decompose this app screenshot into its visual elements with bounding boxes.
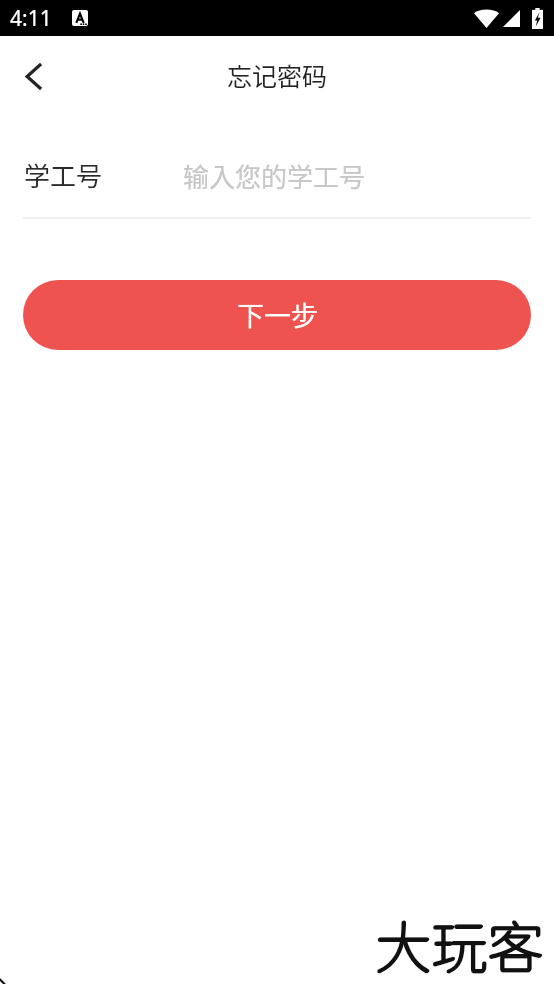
- staticText: 学工号: [24, 156, 103, 194]
- button[interactable]: 下一步: [23, 280, 531, 350]
- staticText: 下一步: [237, 295, 318, 334]
- staticText: 大玩客: [375, 915, 543, 981]
- staticText: 大玩客: [375, 914, 543, 980]
- staticText: 大玩客: [376, 914, 544, 980]
- staticText: 输入您的学工号: [183, 157, 366, 195]
- staticText: 4:11: [10, 4, 52, 33]
- button[interactable]: Back: [6, 49, 60, 103]
- staticText: 忘记密码: [0, 57, 554, 93]
